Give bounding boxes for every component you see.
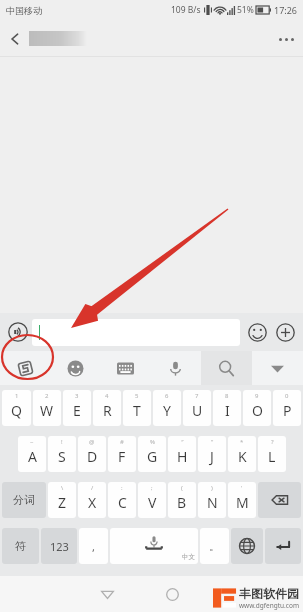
button[interactable]: : [108,482,136,518]
staticText: @ [89,438,95,446]
staticText: H [177,447,188,466]
staticText: # [120,438,124,446]
button[interactable]: 0 [273,390,301,426]
button[interactable]: Back [90,577,124,611]
button[interactable]: / [78,482,106,518]
staticText: ; [151,484,153,492]
button[interactable]: 符 [2,528,39,564]
button[interactable]: Emoticons [50,351,100,385]
button[interactable]: Keyboard layout [100,351,150,385]
staticText: M [236,493,249,512]
button[interactable]: ! [48,436,76,472]
button[interactable]: ' [228,482,256,518]
staticText: A [28,447,37,466]
button[interactable]: , [79,528,108,564]
staticText: 中国移动 [6,5,42,16]
staticText: B [177,493,187,512]
button[interactable] [32,319,240,346]
button[interactable]: Search [201,351,252,385]
staticText: 7 [195,392,199,400]
button[interactable]: Sogou input [0,351,50,385]
staticText: 3 [75,392,79,400]
staticText: , [92,539,95,554]
button[interactable]: Emoji [243,318,271,346]
button[interactable]: 5 [123,390,151,426]
button[interactable]: Home [155,577,189,611]
staticText: 5 [135,392,139,400]
staticText: 2 [45,392,49,400]
staticText: % [150,438,155,446]
staticText: 17:26 [274,4,298,16]
staticText: \ [61,484,64,492]
staticText: P [283,401,292,420]
button[interactable]: Space [110,528,198,564]
button[interactable]: 4 [93,390,121,426]
staticText: ~ [30,438,34,446]
staticText: 9 [255,392,259,400]
button[interactable]: Back [0,24,30,54]
button[interactable]: More options [269,22,303,56]
staticText: 中文 [182,553,195,561]
staticText: : [121,484,123,492]
staticText: 123 [50,539,69,554]
staticText: D [87,447,98,466]
staticText: 109 B/s [171,4,201,16]
button[interactable]: 分词 [2,482,46,518]
button[interactable]: ? [258,436,286,472]
staticText: 分词 [13,493,35,507]
staticText: C [118,493,127,512]
button[interactable]: ~ [18,436,46,472]
button[interactable]: ) [198,482,226,518]
button[interactable]: 6 [153,390,181,426]
staticText: 4 [105,392,109,400]
staticText: T [133,401,141,420]
button[interactable]: Add [271,318,299,346]
staticText: 1 [15,392,19,400]
button[interactable]: % [138,436,166,472]
staticText: 丰图软件园 [239,586,299,601]
staticText: N [207,493,218,512]
staticText: ) [211,484,213,492]
button[interactable]: * [228,436,256,472]
button[interactable]: @ [78,436,106,472]
staticText: www.dgfengtu.com [239,601,299,610]
staticText: F [118,447,126,466]
staticText: Z [58,493,67,512]
staticText: I [225,401,230,420]
staticText: " [211,438,214,446]
staticText: Y [163,401,171,420]
button[interactable]: Enter [265,528,301,564]
button[interactable]: Voice input [150,351,201,385]
button[interactable]: ″ [168,436,196,472]
button[interactable]: # [108,436,136,472]
button[interactable]: 3 [63,390,91,426]
staticText: E [73,401,81,420]
button[interactable]: " [198,436,226,472]
staticText: 51% [237,4,254,16]
button[interactable]: 123 [41,528,77,564]
staticText: V [148,493,157,512]
staticText: S [58,447,66,466]
button[interactable]: 。 [200,528,229,564]
staticText: ' [241,484,243,492]
staticText: ! [61,438,63,446]
button[interactable]: 1 [2,390,31,426]
staticText: R [103,401,112,420]
button[interactable]: Language [231,528,263,564]
button[interactable]: 7 [183,390,211,426]
button[interactable]: Voice message [4,318,32,346]
button[interactable]: 8 [213,390,241,426]
button[interactable]: Backspace [258,482,301,518]
button[interactable]: 2 [33,390,61,426]
staticText: ″ [181,438,184,446]
button[interactable]: Hide keyboard [252,351,303,385]
staticText: K [238,447,247,466]
staticText: 符 [15,539,26,553]
button[interactable]: ( [168,482,196,518]
staticText: W [40,401,54,420]
staticText: O [252,401,263,420]
button[interactable]: 9 [243,390,271,426]
button[interactable]: \ [48,482,76,518]
staticText: 6 [165,392,169,400]
button[interactable]: ; [138,482,166,518]
